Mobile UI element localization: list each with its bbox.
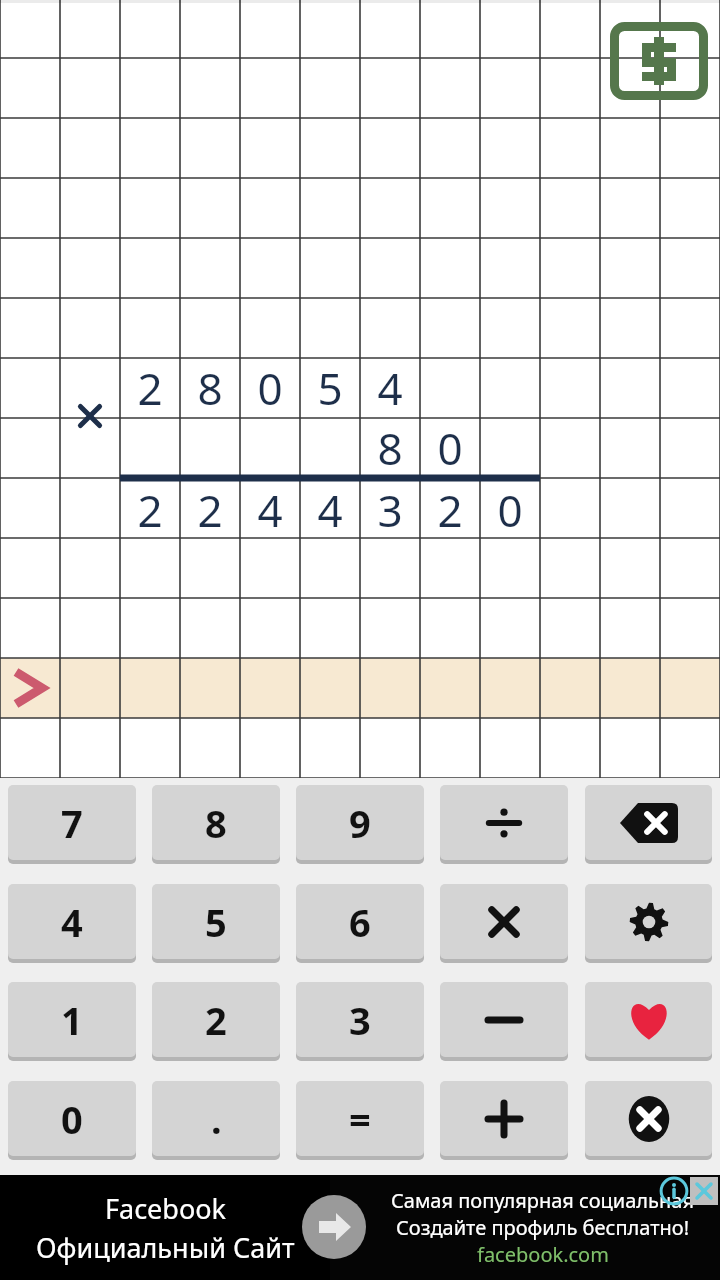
staticText: .	[211, 1093, 222, 1145]
staticText: 0	[497, 480, 523, 540]
staticText: 5	[205, 896, 227, 948]
staticText: 4	[257, 480, 283, 540]
button[interactable]: 6	[296, 884, 424, 959]
staticText: 0	[61, 1093, 83, 1145]
staticText: 2	[437, 480, 463, 540]
staticText: 2	[197, 480, 223, 540]
staticText: 8	[377, 418, 403, 478]
button[interactable]: Clear	[585, 1081, 712, 1156]
staticText: 2	[137, 358, 163, 418]
staticText: 8	[205, 797, 227, 849]
button[interactable]: .	[152, 1081, 280, 1156]
button[interactable]: Backspace	[585, 785, 712, 860]
button[interactable]: 3	[296, 982, 424, 1057]
staticText: Создайте профиль бесплатно!	[396, 1214, 690, 1241]
staticText: 3	[377, 480, 403, 540]
button[interactable]: 9	[296, 785, 424, 860]
button[interactable]: 2	[152, 982, 280, 1057]
button[interactable]: 0	[8, 1081, 136, 1156]
button[interactable]: Close ad	[690, 1177, 718, 1205]
staticText: 5	[317, 358, 343, 418]
staticText: Официальный Сайт	[36, 1229, 295, 1266]
button[interactable]: Remove ads	[610, 22, 708, 100]
button[interactable]: 4	[8, 884, 136, 959]
button[interactable]: 7	[8, 785, 136, 860]
staticText: Facebook	[105, 1190, 227, 1227]
button[interactable]: Open ad	[302, 1195, 366, 1259]
button[interactable]: Multiply	[440, 884, 568, 959]
staticText: 4	[61, 896, 83, 948]
button[interactable]: 5	[152, 884, 280, 959]
button[interactable]: Plus	[440, 1081, 568, 1156]
button[interactable]: 1	[8, 982, 136, 1057]
staticText: 2	[205, 994, 227, 1046]
button[interactable]: Divide	[440, 785, 568, 860]
button[interactable]: =	[296, 1081, 424, 1156]
staticText: 9	[349, 797, 371, 849]
staticText: facebook.com	[477, 1241, 609, 1268]
staticText: 1	[61, 994, 83, 1046]
staticText: 4	[317, 480, 343, 540]
staticText: 0	[437, 418, 463, 478]
staticText: 2	[137, 480, 163, 540]
staticText: 3	[349, 994, 371, 1046]
staticText: Самая популярная социальная	[391, 1187, 694, 1214]
staticText: 6	[349, 896, 371, 948]
staticText: 7	[61, 797, 83, 849]
staticText: =	[349, 1093, 371, 1145]
button[interactable]: 8	[152, 785, 280, 860]
button[interactable]: Ad information	[660, 1177, 688, 1205]
button[interactable]: Settings	[585, 884, 712, 959]
staticText: 8	[197, 358, 223, 418]
button[interactable]: Facebook	[0, 1175, 720, 1280]
staticText: 4	[377, 358, 403, 418]
staticText: 0	[257, 358, 283, 418]
button[interactable]: Favorite	[585, 982, 712, 1057]
button[interactable]: Minus	[440, 982, 568, 1057]
